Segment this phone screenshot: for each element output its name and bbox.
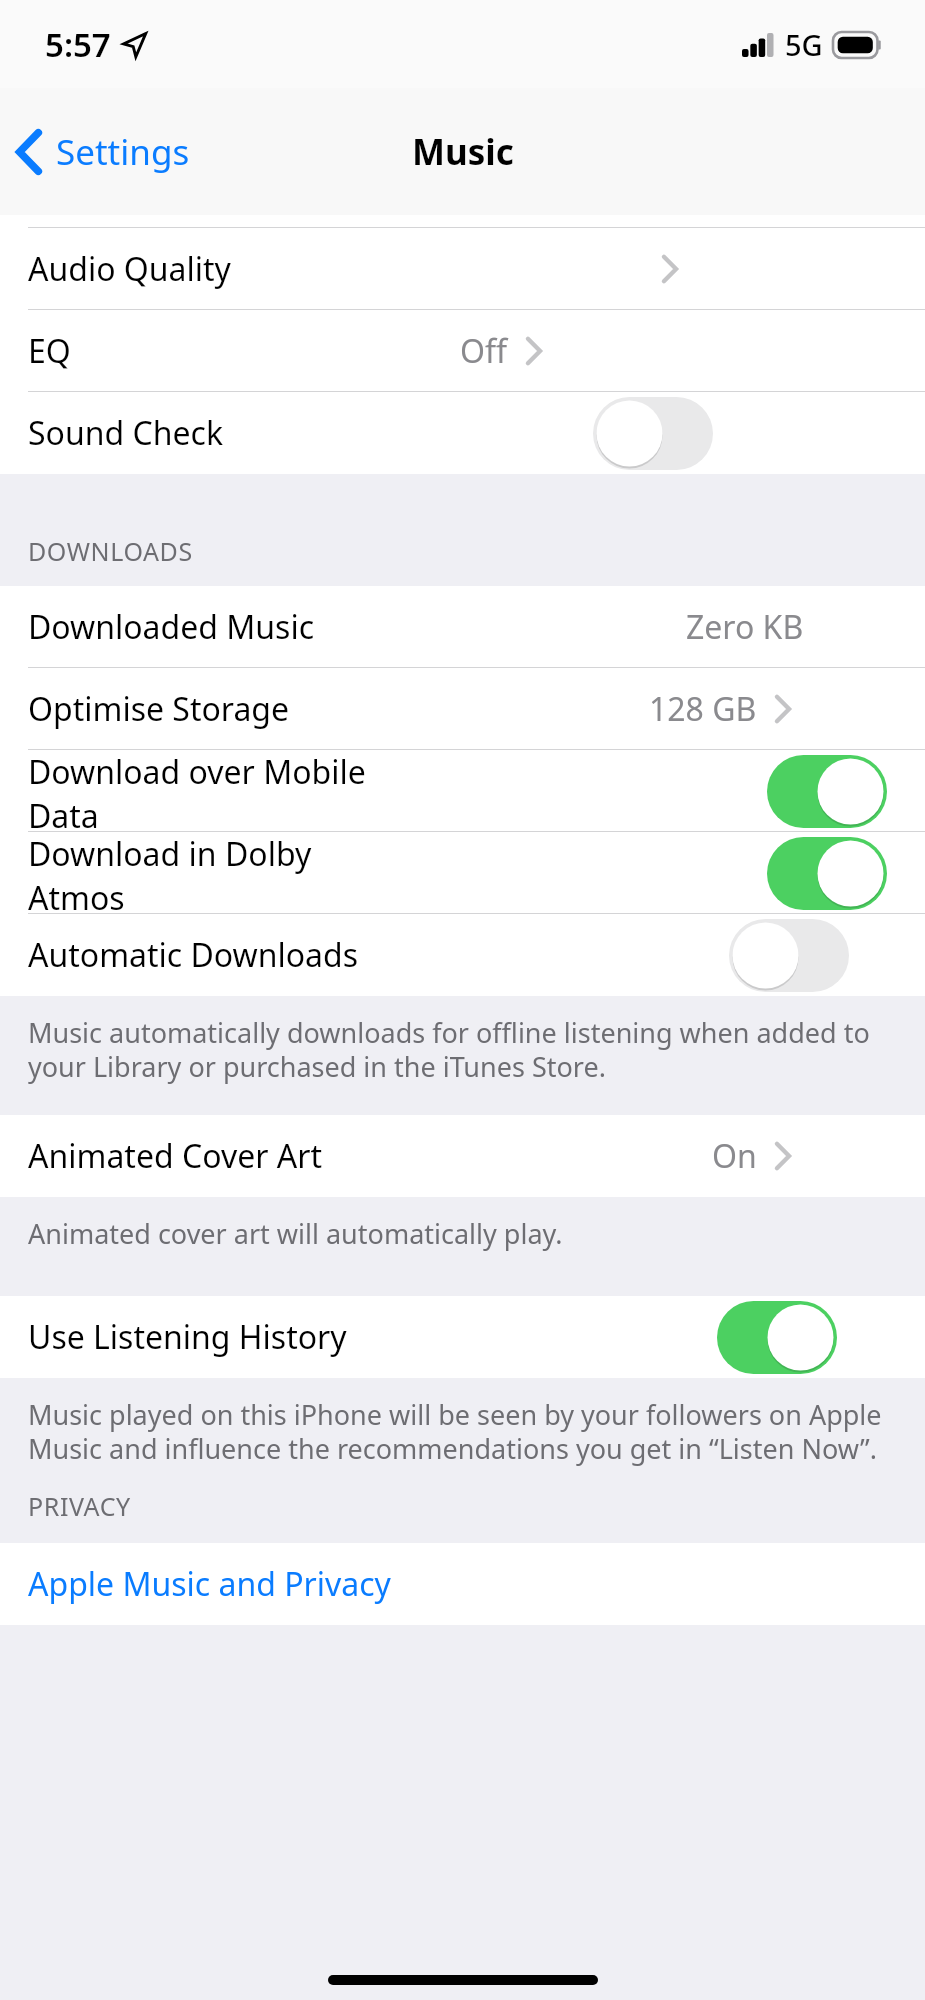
staticText: Optimise Storage bbox=[28, 687, 290, 731]
staticText: Download over Mobile Data bbox=[28, 750, 397, 832]
staticText: PRIVACY bbox=[28, 1489, 131, 1523]
staticText: 128 GB bbox=[649, 687, 757, 731]
staticText: Music bbox=[412, 128, 514, 176]
button[interactable]: Optimise Storage bbox=[0, 668, 925, 750]
button[interactable]: Sound Check bbox=[0, 392, 925, 474]
staticText: Audio Quality bbox=[28, 247, 231, 291]
staticText: Automatic Downloads bbox=[28, 933, 359, 977]
staticText: Music played on this iPhone will be seen… bbox=[28, 1396, 885, 1467]
staticText: On bbox=[712, 1134, 757, 1178]
button[interactable]: EQ bbox=[0, 310, 925, 392]
staticText: Off bbox=[460, 329, 508, 373]
button[interactable]: Download over Mobile Data bbox=[0, 750, 925, 832]
button[interactable]: Settings bbox=[0, 107, 204, 197]
staticText: Apple Music and Privacy bbox=[28, 1562, 391, 1606]
button[interactable]: On bbox=[717, 1301, 837, 1374]
staticText: Download in Dolby Atmos bbox=[28, 832, 397, 914]
button[interactable]: Off bbox=[593, 397, 713, 470]
button[interactable]: On bbox=[767, 837, 887, 910]
button[interactable]: On bbox=[767, 755, 887, 828]
button[interactable]: Off bbox=[729, 919, 849, 992]
button[interactable]: Animated Cover Art bbox=[0, 1115, 925, 1197]
staticText: Use Listening History bbox=[28, 1315, 347, 1359]
staticText: Sound Check bbox=[28, 411, 223, 455]
staticText: DOWNLOADS bbox=[28, 534, 193, 568]
button[interactable]: Downloaded Music bbox=[0, 586, 925, 668]
button[interactable]: Apple Music and Privacy bbox=[0, 1543, 925, 1625]
button[interactable]: Use Listening History bbox=[0, 1296, 925, 1378]
staticText: Settings bbox=[56, 128, 190, 176]
staticText: Animated cover art will automatically pl… bbox=[28, 1215, 563, 1252]
staticText: Animated Cover Art bbox=[28, 1134, 322, 1178]
staticText: Music automatically downloads for offlin… bbox=[28, 1014, 885, 1085]
button[interactable]: Download in Dolby Atmos bbox=[0, 832, 925, 914]
button[interactable]: Automatic Downloads bbox=[0, 914, 925, 996]
staticText: 5:57 bbox=[45, 22, 111, 67]
staticText: Downloaded Music bbox=[28, 605, 315, 649]
staticText: EQ bbox=[28, 329, 71, 373]
staticText: 5G bbox=[785, 25, 823, 64]
staticText: Zero KB bbox=[686, 605, 804, 649]
button[interactable]: Audio Quality bbox=[0, 228, 925, 310]
